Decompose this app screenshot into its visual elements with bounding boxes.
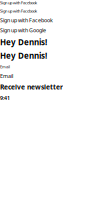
staticText: Sign up with Facebook xyxy=(0,0,37,5)
staticText: Hey Dennis! xyxy=(0,37,47,47)
staticText: Hey Dennis! xyxy=(0,50,47,61)
staticText: 9:41 xyxy=(0,94,10,101)
staticText: Sign up with Facebook xyxy=(0,8,37,14)
staticText: Email xyxy=(0,72,13,79)
staticText: Email xyxy=(0,64,10,69)
staticText: Sign up with Facebook xyxy=(0,17,53,24)
staticText: Receive newsletter xyxy=(0,82,63,91)
staticText: Sign up with Google xyxy=(0,27,46,34)
